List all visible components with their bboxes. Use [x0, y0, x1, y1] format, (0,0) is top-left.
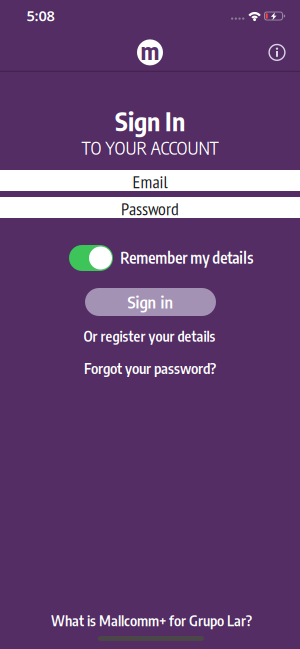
staticText: Or register your details	[83, 327, 215, 345]
staticText: What is Mallcomm+ for Grupo Lar?	[51, 611, 252, 629]
staticText: 5:08	[26, 6, 54, 25]
staticText: Sign In	[115, 105, 185, 137]
button[interactable]: What is Mallcomm+ for Grupo Lar?	[51, 611, 252, 629]
button[interactable]: Remember my details	[69, 245, 113, 271]
button[interactable]: Or register your details	[83, 327, 215, 345]
button[interactable]: Forgot your password?	[84, 359, 216, 377]
staticText: Password	[121, 197, 179, 220]
button[interactable]: Info	[264, 39, 290, 65]
button[interactable]: Email	[0, 169, 300, 192]
staticText: Sign in	[127, 291, 173, 312]
staticText: Remember my details	[120, 248, 253, 267]
staticText: Forgot your password?	[84, 359, 216, 377]
staticText: TO YOUR ACCOUNT	[81, 136, 218, 159]
staticText: Email	[132, 170, 167, 193]
button[interactable]: Mallcomm	[135, 37, 165, 67]
button[interactable]: Sign in	[85, 288, 216, 316]
button[interactable]: Password	[0, 196, 300, 219]
staticText: m	[140, 35, 159, 65]
